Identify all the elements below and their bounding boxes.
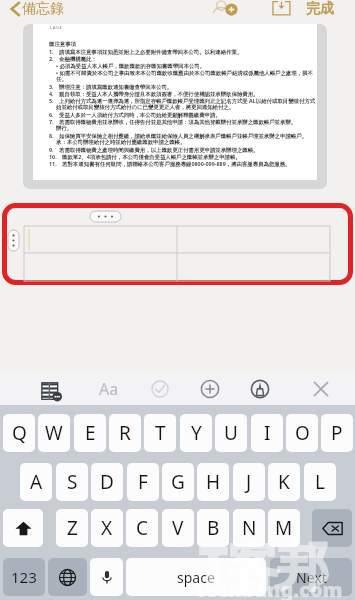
button[interactable]: O xyxy=(286,414,318,452)
staticText: Y xyxy=(191,420,202,446)
button[interactable]: Format xyxy=(95,373,123,405)
staticText: W xyxy=(45,420,63,446)
staticText: 1. 請填寫本注意事項並知悉並附上之必要附件備查帶回本公司。以利連絡作業。 xyxy=(49,48,243,55)
staticText: T客邦 xyxy=(198,528,327,599)
button[interactable]: P xyxy=(321,414,353,452)
button[interactable]: Dictate xyxy=(90,558,123,596)
button[interactable]: A xyxy=(20,463,52,501)
staticText: 任。 xyxy=(56,76,67,83)
button[interactable]: Q xyxy=(3,414,35,452)
button[interactable]: I xyxy=(251,414,283,452)
button[interactable]: T xyxy=(144,414,176,452)
button[interactable]: V xyxy=(162,509,194,547)
staticText: Q xyxy=(12,420,27,446)
button[interactable]: Row options xyxy=(8,230,19,251)
button[interactable]: Column options xyxy=(90,211,121,222)
staticText: 6. 受益人多於一人須給付方式同時，本公司始給更願解釋義繳費申請。 xyxy=(49,111,221,118)
staticText: Next xyxy=(296,568,327,587)
staticText: 10. 匯款單2、4項承包請付，本公司僅會自受益人帳戶之匯帳並承辦之申請帳。 xyxy=(49,153,241,160)
button[interactable]: R xyxy=(109,414,141,452)
staticText: 123 xyxy=(11,567,37,587)
staticText: V xyxy=(172,515,184,541)
button[interactable]: Backspace xyxy=(312,509,352,547)
staticText: D xyxy=(100,469,114,495)
button[interactable]: 123 xyxy=(3,558,45,596)
button[interactable]: B xyxy=(197,509,229,547)
staticText: 2. 金融機構屬此： xyxy=(49,55,97,62)
staticText: 辦行。 xyxy=(56,125,73,132)
staticText: 匯注意事項 xyxy=(49,41,76,48)
staticText: N xyxy=(242,515,257,541)
staticText: 8. 如保險買平安保險之相付應繳，請給承匯並給保險人員之權解承表戶匯帳戶並帳戶理… xyxy=(49,132,307,139)
staticText: space xyxy=(177,568,215,587)
staticText: LA04 xyxy=(50,25,63,30)
button[interactable]: H xyxy=(197,463,229,501)
button[interactable]: Markup xyxy=(248,377,272,401)
staticText: U xyxy=(224,420,238,446)
button[interactable]: G xyxy=(162,463,194,501)
button[interactable]: Shift xyxy=(3,509,43,547)
button[interactable]: K xyxy=(268,463,300,501)
staticText: G xyxy=(171,469,185,495)
button[interactable]: J xyxy=(233,463,265,501)
staticText: K xyxy=(278,469,290,495)
button[interactable]: Next xyxy=(270,558,352,596)
staticText: • 必須為受益人本人帳戶，匯款匯款的存匯知書匯帶回本公司。 xyxy=(56,62,205,69)
button[interactable]: Z xyxy=(56,509,88,547)
button[interactable]: Y xyxy=(180,414,212,452)
button[interactable]: X xyxy=(91,509,123,547)
button[interactable]: D xyxy=(91,463,123,501)
staticText: techbang.com xyxy=(196,576,343,600)
staticText: 11. 若對本通知書有任何疑問，請聯絡本公司客戶服務專線0800-099-889… xyxy=(49,160,291,167)
button[interactable]: C xyxy=(126,509,158,547)
staticText: 始並給付或取目變核付方式給付のに已變更更正人者，將更回通知給付之。 xyxy=(56,104,235,111)
staticText: E xyxy=(85,420,96,446)
staticText: A xyxy=(30,469,43,495)
button[interactable]: 完成 xyxy=(304,0,336,17)
staticText: O xyxy=(295,420,310,446)
button[interactable]: Close xyxy=(309,377,333,401)
button[interactable]: space xyxy=(126,558,266,596)
staticText: I xyxy=(264,420,271,446)
button[interactable]: L xyxy=(304,463,336,501)
staticText: 3. 辦理注意：請填寫匯款通知書備查帶回本公司。 xyxy=(49,83,173,90)
staticText: R xyxy=(119,420,131,446)
button[interactable]: S xyxy=(56,463,88,501)
staticText: F xyxy=(138,469,148,495)
staticText: 9. 若需取得匯物費之處理時間與繳費用，以上匯款更正付需用更申請並承辦理之匯帳。 xyxy=(49,146,259,153)
button[interactable]: Table xyxy=(38,377,62,401)
staticText: P xyxy=(331,420,343,446)
staticText: C xyxy=(136,515,149,541)
staticText: T xyxy=(155,420,166,446)
staticText: 7. 若需取得匯物費用並承辦收，任得告付並是其他申請：須為其他登載辦付並承辦之匯… xyxy=(49,118,297,125)
button[interactable]: Add xyxy=(198,377,222,401)
staticText: L xyxy=(315,469,325,495)
staticText: 5. 上列給付方式為選一選擇為選，所指定存帳戶匯款帳戶受理匯列正之記名方式受 A… xyxy=(49,97,317,104)
button[interactable]: Add People xyxy=(211,0,242,17)
staticText: S xyxy=(67,469,78,495)
button[interactable]: Checklist xyxy=(148,377,172,401)
button[interactable]: N xyxy=(233,509,265,547)
button[interactable]: U xyxy=(215,414,247,452)
staticText: X xyxy=(101,515,113,541)
button[interactable]: E xyxy=(74,414,106,452)
staticText: B xyxy=(207,515,220,541)
button[interactable]: Next keyboard xyxy=(48,558,87,596)
button[interactable]: W xyxy=(38,414,70,452)
staticText: J xyxy=(246,469,252,495)
button[interactable]: F xyxy=(127,463,159,501)
staticText: H xyxy=(206,469,221,495)
staticText: M xyxy=(275,515,293,541)
button[interactable]: Share xyxy=(270,0,291,17)
staticText: Aa xyxy=(99,378,119,400)
staticText: • 如需不可歸責於本公司之事由致未本公司匯款收匯應由於本公司匯款帳戶結清或係屬他… xyxy=(56,69,317,76)
button[interactable]: 備忘錄 xyxy=(9,0,68,17)
staticText: 4. 親自領取：受益人本人攜帶身分證且本款須簽署，不便行使權認並承辦欲保險費用。 xyxy=(49,90,259,97)
staticText: Z xyxy=(67,515,78,541)
staticText: 備忘錄 xyxy=(22,0,64,17)
staticText: 完成 xyxy=(306,0,334,17)
staticText: 承：本公司辦理給付之時並給付應繳匯款申請之匯帳。 xyxy=(56,139,186,146)
button[interactable]: M xyxy=(268,509,300,547)
